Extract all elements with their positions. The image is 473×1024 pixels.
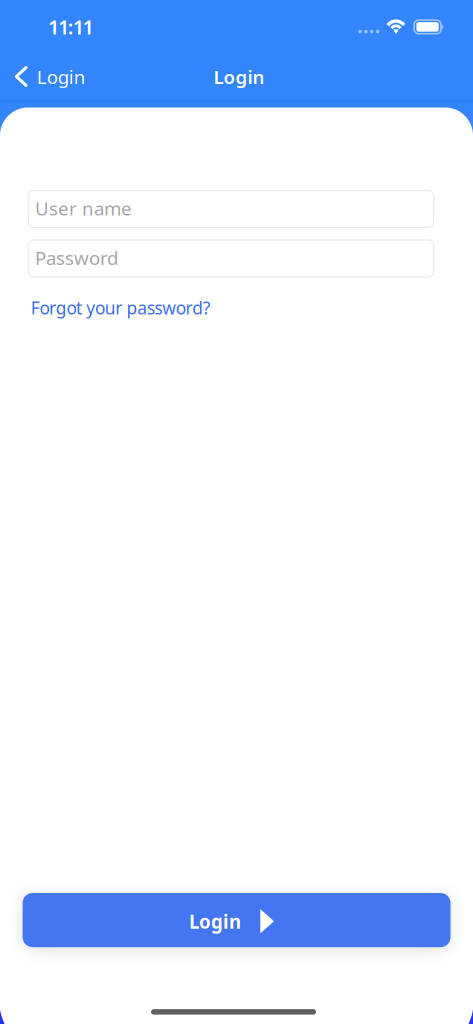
- staticText: Forgot your password?: [31, 296, 211, 319]
- staticText: User name: [35, 196, 132, 221]
- button[interactable]: Login: [23, 893, 450, 947]
- button[interactable]: Password: [28, 240, 434, 277]
- staticText: Login: [37, 64, 86, 89]
- staticText: 11:11: [48, 13, 94, 40]
- staticText: Login: [189, 909, 241, 934]
- button[interactable]: User name: [28, 190, 434, 227]
- staticText: Login: [213, 64, 264, 89]
- button[interactable]: Forgot your password?: [31, 296, 211, 319]
- button[interactable]: Login: [8, 54, 94, 99]
- staticText: Password: [35, 245, 118, 270]
